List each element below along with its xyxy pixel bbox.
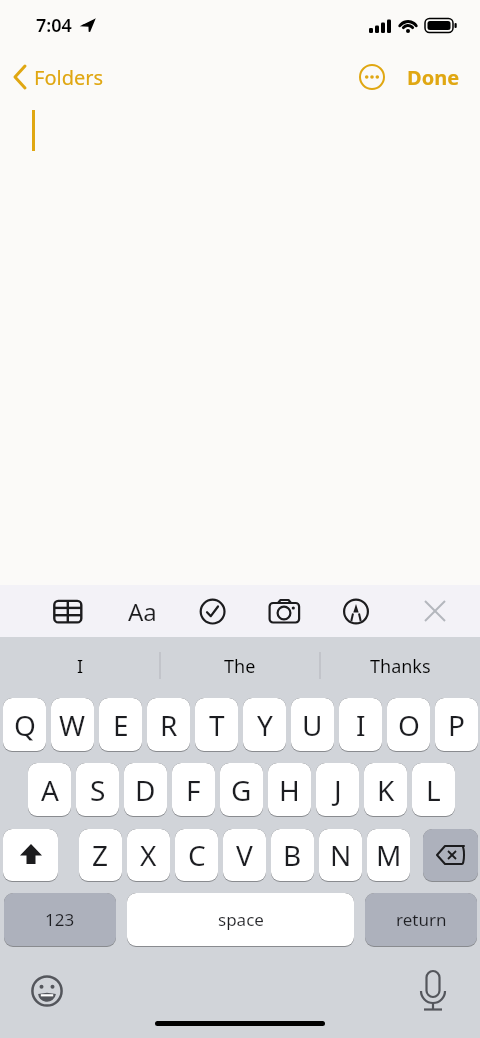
button[interactable]: space [127, 893, 354, 947]
staticText: L [426, 771, 441, 809]
staticText: P [448, 706, 465, 744]
button[interactable] [3, 829, 58, 882]
button[interactable]: B [271, 829, 314, 882]
staticText: C [188, 836, 206, 874]
staticText: Thanks [370, 654, 431, 679]
button[interactable]: R [147, 698, 190, 752]
button[interactable]: I [0, 637, 160, 695]
button[interactable]: F [172, 763, 215, 817]
staticText: Z [92, 836, 109, 874]
button[interactable] [268, 595, 300, 627]
button[interactable]: I [339, 698, 382, 752]
staticText: space [218, 908, 264, 931]
staticText: Y [257, 706, 273, 744]
staticText: T [209, 706, 225, 744]
staticText: I [356, 706, 366, 744]
button[interactable] [51, 595, 83, 627]
button[interactable]: Y [243, 698, 286, 752]
staticText: I [77, 654, 84, 679]
button[interactable] [357, 62, 387, 92]
button[interactable]: H [268, 763, 311, 817]
button[interactable]: O [387, 698, 430, 752]
button[interactable]: Done [402, 62, 464, 92]
button[interactable]: E [99, 698, 142, 752]
staticText: S [90, 771, 106, 809]
staticText: return [396, 908, 447, 931]
staticText: M [376, 836, 402, 874]
staticText: The [224, 654, 256, 679]
staticText: 7:04 [36, 13, 72, 38]
button[interactable]: J [316, 763, 359, 817]
button[interactable]: A [28, 763, 71, 817]
staticText: N [330, 836, 352, 874]
staticText: H [279, 771, 300, 809]
staticText: G [231, 771, 252, 809]
button[interactable]: C [175, 829, 218, 882]
staticText: Folders [34, 64, 104, 91]
button[interactable]: Q [3, 698, 46, 752]
button[interactable]: Aa [122, 595, 162, 627]
button[interactable]: return [365, 893, 477, 947]
staticText: 123 [45, 908, 75, 931]
staticText: F [186, 771, 201, 809]
button[interactable]: 123 [4, 893, 116, 947]
staticText: B [283, 836, 302, 874]
button[interactable] [29, 973, 65, 1009]
button[interactable] [422, 598, 448, 624]
staticText: R [160, 706, 178, 744]
button[interactable]: X [127, 829, 170, 882]
button[interactable]: Thanks [320, 637, 480, 695]
button[interactable]: N [319, 829, 362, 882]
button[interactable]: The [160, 637, 320, 695]
button[interactable]: Z [79, 829, 122, 882]
button[interactable]: V [223, 829, 266, 882]
staticText: U [302, 706, 323, 744]
staticText: O [398, 706, 420, 744]
button[interactable] [340, 595, 372, 627]
button[interactable] [415, 968, 451, 1014]
staticText: D [135, 771, 156, 809]
staticText: A [41, 771, 59, 809]
button[interactable]: L [412, 763, 455, 817]
staticText: Done [407, 64, 460, 91]
staticText: K [377, 771, 395, 809]
button[interactable] [196, 595, 228, 627]
button[interactable]: G [220, 763, 263, 817]
button[interactable]: D [124, 763, 167, 817]
button[interactable]: S [76, 763, 119, 817]
button[interactable]: W [51, 698, 94, 752]
staticText: V [236, 836, 253, 874]
staticText: X [140, 836, 157, 874]
staticText: J [334, 771, 342, 809]
staticText: W [59, 706, 86, 744]
button[interactable]: M [367, 829, 410, 882]
button[interactable]: Folders [8, 60, 118, 94]
button[interactable]: T [195, 698, 238, 752]
button[interactable]: K [364, 763, 407, 817]
staticText: Q [14, 706, 36, 744]
button[interactable]: P [435, 698, 478, 752]
button[interactable] [423, 829, 478, 882]
staticText: E [113, 706, 129, 744]
button[interactable]: U [291, 698, 334, 752]
staticText: Aa [128, 595, 157, 627]
